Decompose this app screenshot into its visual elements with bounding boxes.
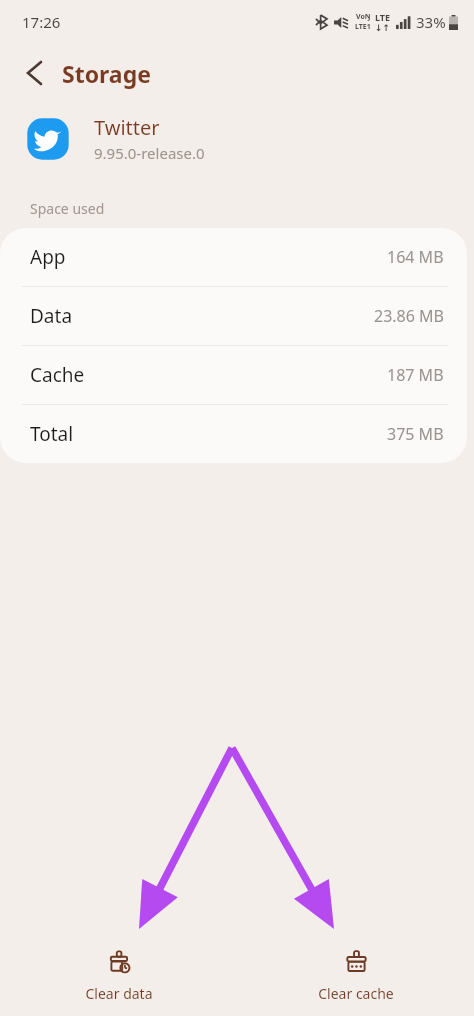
staticText: Clear data xyxy=(85,984,153,1003)
staticText: Twitter xyxy=(94,114,160,141)
staticText: Clear cache xyxy=(318,984,394,1003)
staticText: Space used xyxy=(30,199,105,218)
staticText: 375 MB xyxy=(387,423,444,445)
button[interactable]: Back xyxy=(14,53,54,93)
staticText: 17:26 xyxy=(22,12,61,32)
staticText: LTE1 xyxy=(355,22,371,32)
staticText: 9.95.0-release.0 xyxy=(94,143,205,163)
staticText: 33% xyxy=(416,12,446,32)
button[interactable]: Cache xyxy=(0,346,467,404)
staticText: Total xyxy=(30,421,74,447)
staticText: Cache xyxy=(30,362,85,388)
staticText: 187 MB xyxy=(387,364,444,386)
staticText: App xyxy=(30,244,66,270)
staticText: 23.86 MB xyxy=(374,305,444,327)
staticText: Data xyxy=(30,303,73,329)
staticText: VoŊ xyxy=(356,12,371,22)
staticText: LTE xyxy=(375,11,391,23)
button[interactable]: App xyxy=(0,228,467,286)
staticText: 164 MB xyxy=(387,246,444,268)
button[interactable]: Data xyxy=(0,287,467,345)
button[interactable]: Clear data xyxy=(0,938,237,1003)
staticText: ↓↑ xyxy=(375,23,391,33)
staticText: Storage xyxy=(62,58,151,89)
button[interactable]: Total xyxy=(0,405,467,463)
button[interactable]: Clear cache xyxy=(237,938,474,1003)
